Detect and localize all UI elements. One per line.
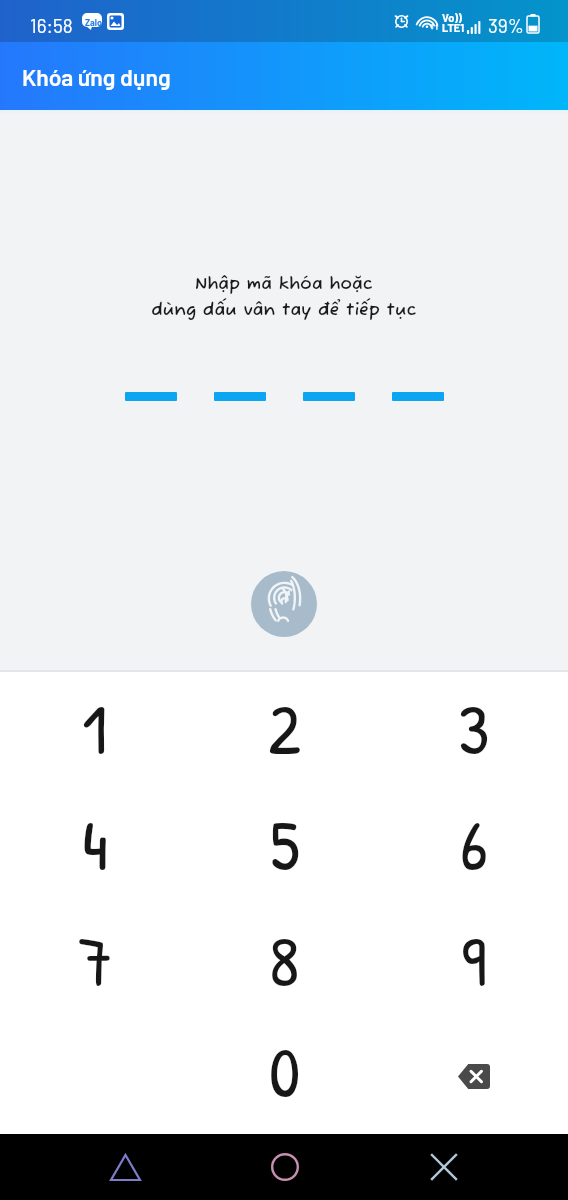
button[interactable]: 5 [190, 795, 379, 911]
staticText: 4 [82, 797, 109, 892]
staticText: 1 [82, 681, 108, 776]
staticText: Vo)) [442, 11, 462, 24]
staticText: Nhập mã khóa hoặc [195, 273, 373, 295]
button[interactable]: 3 [379, 679, 568, 795]
button[interactable]: 9 [379, 911, 568, 1027]
button[interactable]: 0 [190, 1027, 379, 1134]
staticText: 9 [461, 913, 487, 1008]
button[interactable]: Xóa [379, 1027, 568, 1134]
button[interactable]: 2 [190, 679, 379, 795]
staticText: Zalo [85, 17, 102, 28]
staticText: dùng dấu vân tay để tiếp tục [151, 299, 417, 321]
button[interactable]: Recent apps [401, 1134, 486, 1200]
staticText: 3 [458, 681, 490, 776]
button[interactable]: 6 [379, 795, 568, 911]
staticText: 5 [270, 797, 300, 892]
staticText: 16:58 [30, 14, 73, 37]
button[interactable]: 8 [190, 911, 379, 1027]
staticText: 8 [269, 913, 300, 1008]
staticText: 7 [78, 913, 113, 1008]
button[interactable]: Home [242, 1134, 327, 1200]
button[interactable]: 7 [0, 911, 190, 1027]
staticText: Khóa ứng dụng [22, 63, 171, 91]
button[interactable]: Xác thực bằng vân tay [251, 571, 317, 637]
button[interactable]: Back [83, 1134, 168, 1200]
staticText: 39% [488, 14, 524, 37]
staticText: 6 [460, 797, 488, 892]
staticText: 0 [269, 1024, 301, 1119]
button[interactable]: 4 [0, 795, 190, 911]
staticText: LTE1 [442, 21, 465, 34]
staticText: 2 [268, 681, 301, 776]
button[interactable]: 1 [0, 679, 190, 795]
